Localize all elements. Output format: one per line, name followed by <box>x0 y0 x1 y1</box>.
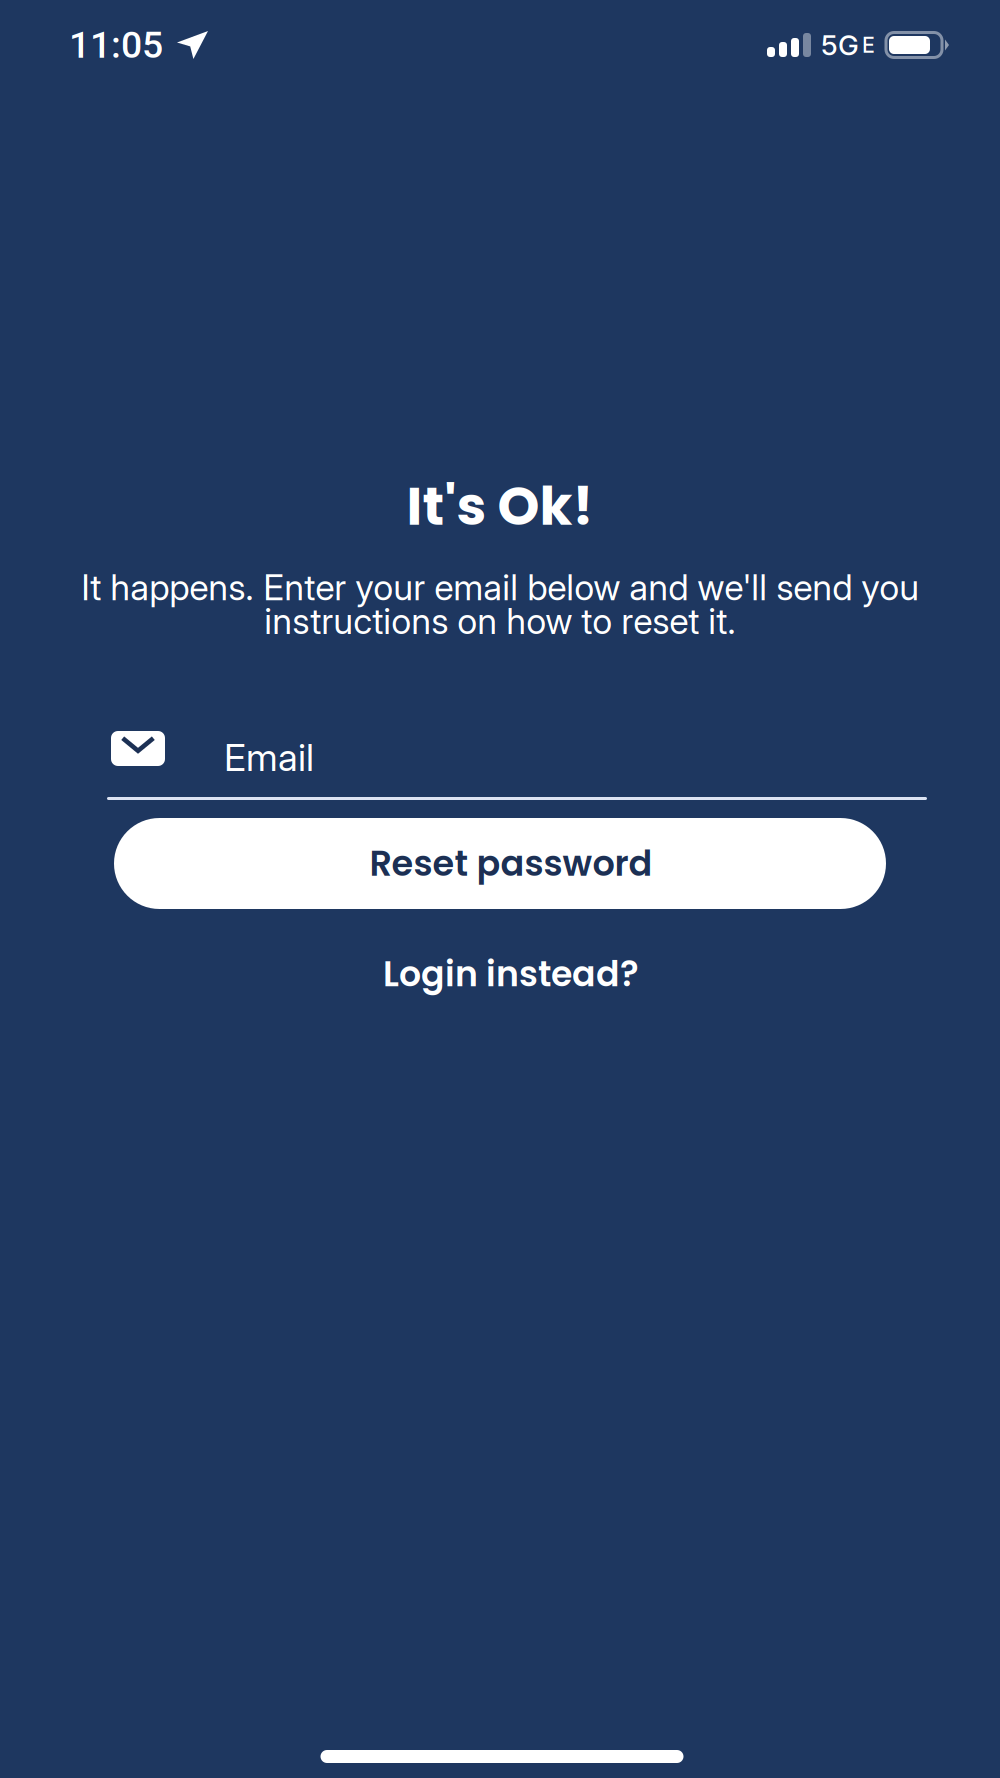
staticText: Reset password <box>369 839 652 888</box>
staticText: 5G <box>821 28 859 62</box>
staticText: It happens. Enter your email below and w… <box>81 566 919 642</box>
button[interactable]: Login instead? <box>311 943 711 1005</box>
staticText: Email <box>224 735 314 780</box>
staticText: It's Ok! <box>406 469 593 543</box>
staticText: Login instead? <box>383 950 639 998</box>
staticText: E <box>862 32 875 58</box>
button[interactable]: Reset password <box>114 818 886 909</box>
staticText: 11:05 <box>69 23 163 67</box>
button[interactable]: Email <box>107 731 927 800</box>
